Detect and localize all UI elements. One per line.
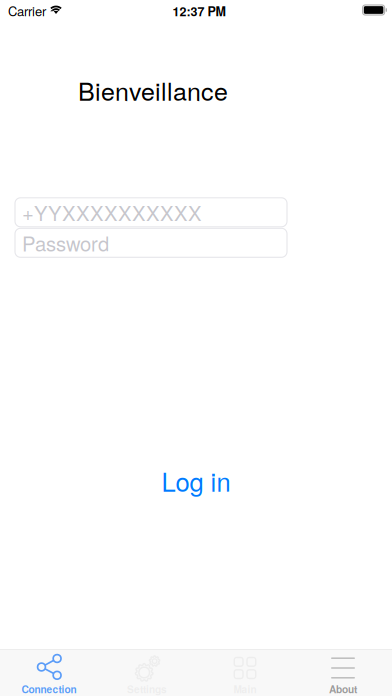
button[interactable]: About bbox=[294, 650, 392, 696]
staticText: Main bbox=[233, 682, 256, 696]
button[interactable]: Log in bbox=[147, 457, 244, 504]
staticText: 12:37 PM bbox=[172, 2, 225, 20]
staticText: +YYXXXXXXXXXX bbox=[22, 198, 202, 227]
staticText: Password bbox=[22, 228, 109, 257]
staticText: About bbox=[329, 682, 357, 696]
staticText: Log in bbox=[161, 462, 230, 499]
button[interactable]: Connection bbox=[0, 650, 98, 696]
staticText: Settings bbox=[127, 682, 167, 696]
staticText: Connection bbox=[21, 682, 76, 696]
staticText: Bienveillance bbox=[78, 72, 228, 108]
staticText: Carrier bbox=[8, 1, 46, 20]
